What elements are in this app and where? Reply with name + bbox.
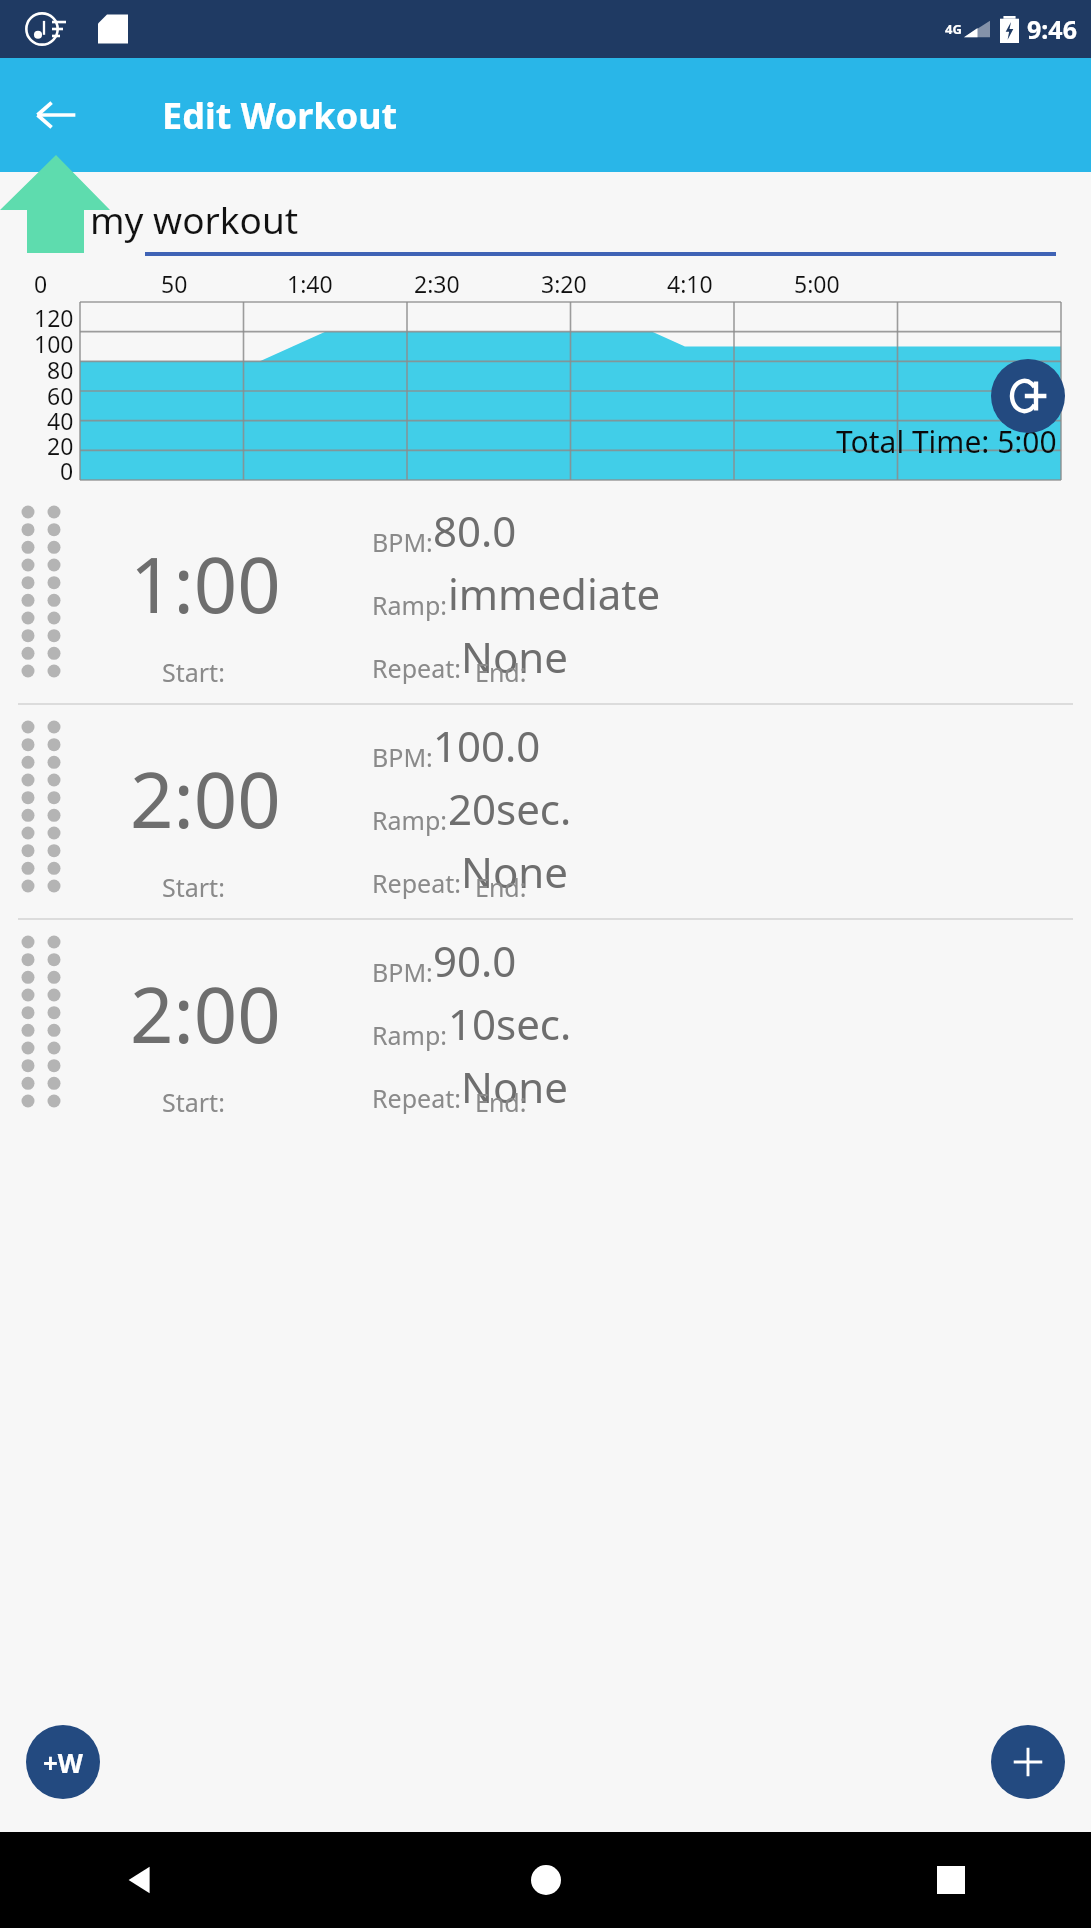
staticText: 40	[47, 405, 74, 430]
staticText: BPM:	[372, 955, 433, 989]
staticText: 50	[161, 268, 188, 299]
staticText: 120	[34, 302, 74, 328]
staticText: 4:10	[667, 268, 713, 299]
staticText: Start:	[162, 870, 225, 904]
staticText: immediate	[448, 565, 661, 622]
staticText: Ramp:	[372, 803, 448, 837]
staticText: 0	[60, 455, 74, 480]
button[interactable]: Add timer	[991, 359, 1065, 433]
button[interactable]: Back	[110, 1850, 170, 1910]
staticText: Repeat:	[372, 651, 461, 685]
staticText: 2:00	[130, 962, 281, 1066]
staticText: End:	[475, 1085, 527, 1119]
staticText: Edit Workout	[162, 91, 398, 140]
staticText: 60	[47, 380, 74, 405]
staticText: Start:	[162, 1085, 225, 1119]
button[interactable]: Home	[516, 1850, 576, 1910]
staticText: 80	[47, 354, 74, 380]
staticText: BPM:	[372, 525, 433, 559]
staticText: 4G	[945, 20, 962, 38]
button[interactable]: Recents	[921, 1850, 981, 1910]
button[interactable]: 2:00	[0, 705, 1091, 918]
staticText: End:	[475, 870, 527, 904]
staticText: 90.0	[433, 932, 517, 989]
button[interactable]: 2:00	[0, 920, 1091, 1133]
staticText: None	[461, 628, 568, 685]
button[interactable]: +W	[26, 1725, 100, 1799]
staticText: 100.0	[433, 717, 541, 774]
button[interactable]: Add	[991, 1725, 1065, 1799]
staticText: Ramp:	[372, 1018, 448, 1052]
staticText: 100	[34, 328, 74, 354]
staticText: my workout	[90, 194, 299, 244]
staticText: Repeat:	[372, 866, 461, 900]
staticText: 20sec.	[448, 780, 572, 837]
staticText: 80.0	[433, 502, 517, 559]
staticText: 20	[47, 430, 74, 455]
staticText: +W	[43, 1745, 84, 1780]
staticText: Total Time: 5:00	[836, 421, 1057, 462]
staticText: None	[461, 1058, 568, 1115]
staticText: Start:	[162, 655, 225, 689]
staticText: BPM:	[372, 740, 433, 774]
staticText: None	[461, 843, 568, 900]
staticText: 10sec.	[448, 995, 572, 1052]
button[interactable]: Back	[26, 85, 86, 145]
staticText: 1:40	[287, 268, 333, 299]
staticText: 0	[34, 268, 48, 299]
staticText: 5:00	[794, 268, 840, 299]
staticText: 3:20	[541, 268, 587, 299]
staticText: End:	[475, 655, 527, 689]
staticText: 1:00	[130, 532, 281, 636]
staticText: Ramp:	[372, 588, 448, 622]
button[interactable]: 1:00	[0, 490, 1091, 703]
staticText: 2:30	[414, 268, 460, 299]
staticText: 9:46	[1027, 12, 1077, 46]
staticText: 2:00	[130, 747, 281, 851]
staticText: Repeat:	[372, 1081, 461, 1115]
